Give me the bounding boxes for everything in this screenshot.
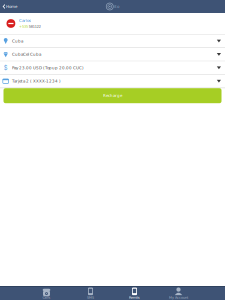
staticText: My Account [169,296,188,299]
button[interactable]: Recharge [3,88,221,103]
button[interactable]: CubaCel Cuba [0,48,225,61]
button[interactable]: Cuba [0,35,225,48]
staticText: +535 [19,25,28,29]
staticText: 581122 [29,25,41,29]
staticText: $ [4,64,8,71]
staticText: SMS [87,296,94,299]
staticText: CubaCel Cuba [12,52,41,57]
button[interactable]: SMS [68,287,112,300]
button[interactable]: $ [0,61,225,75]
staticText: Carlos [19,18,31,23]
button[interactable]: Remove contact [3,15,19,31]
button[interactable]: My Account [156,287,200,300]
staticText: ito [114,4,119,9]
staticText: Remits [129,296,140,299]
button[interactable]: Calls [24,287,68,300]
staticText: Home [6,4,17,9]
button[interactable]: Tarjeta 2 ( XXXX-1234 ) [0,75,225,88]
staticText: Cuba [12,39,23,43]
staticText: Tarjeta 2 ( XXXX-1234 ) [12,79,61,84]
staticText: Recharge [103,93,122,98]
button[interactable]: Home [0,1,21,12]
button[interactable]: Remits [112,287,156,300]
staticText: Pay 23.00 USD (Topup 20.00 CUC) [12,65,84,70]
staticText: Calls [42,296,50,299]
